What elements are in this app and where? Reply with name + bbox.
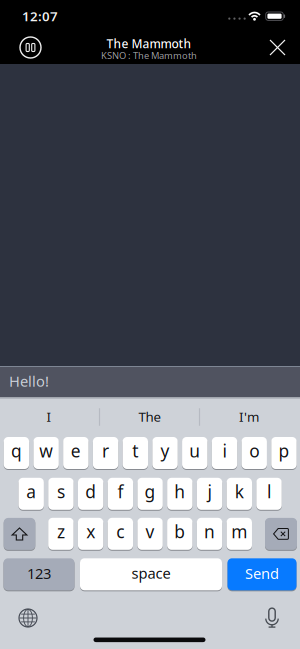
button[interactable]: y xyxy=(152,436,178,469)
button[interactable]: r xyxy=(93,436,118,469)
staticText: l xyxy=(267,480,271,503)
staticText: u xyxy=(189,439,200,462)
staticText: v xyxy=(146,520,155,543)
button[interactable]: m xyxy=(227,517,252,550)
staticText: b xyxy=(174,520,185,543)
staticText: t xyxy=(132,439,138,462)
staticText: k xyxy=(235,480,244,503)
staticText: I xyxy=(46,408,51,425)
staticText: q xyxy=(11,439,22,462)
staticText: h xyxy=(174,480,185,503)
staticText: w xyxy=(39,439,53,462)
button[interactable]: l xyxy=(256,477,282,510)
staticText: p xyxy=(278,439,289,462)
button[interactable] xyxy=(257,603,287,633)
button[interactable] xyxy=(13,603,43,633)
button[interactable]: I xyxy=(1,402,97,430)
staticText: I'm xyxy=(239,408,259,425)
staticText: f xyxy=(117,480,123,503)
staticText: The xyxy=(138,408,161,425)
button[interactable]: d xyxy=(78,477,103,510)
staticText: o xyxy=(249,439,259,462)
staticText: n xyxy=(204,520,215,543)
staticText: e xyxy=(71,439,81,462)
staticText: m xyxy=(231,520,247,543)
button[interactable]: i xyxy=(212,436,237,469)
button[interactable] xyxy=(265,517,297,550)
button[interactable]: w xyxy=(33,436,59,469)
button[interactable]: t xyxy=(123,436,148,469)
staticText: Send xyxy=(245,564,279,583)
staticText: a xyxy=(26,480,36,503)
button[interactable]: g xyxy=(137,477,163,510)
button[interactable]: p xyxy=(271,436,297,469)
staticText: Hello! xyxy=(9,371,49,391)
button[interactable]: h xyxy=(167,477,193,510)
button[interactable]: v xyxy=(137,517,163,550)
button[interactable]: j xyxy=(197,477,222,510)
button[interactable] xyxy=(263,33,291,61)
staticText: d xyxy=(85,480,96,503)
staticText: g xyxy=(145,480,156,503)
button[interactable]: o xyxy=(241,436,267,469)
button[interactable]: Send xyxy=(227,558,296,591)
staticText: c xyxy=(116,520,124,543)
staticText: KSNO : The Mammoth xyxy=(101,49,197,62)
button[interactable]: The xyxy=(102,402,198,430)
button[interactable]: Hello! xyxy=(0,367,300,397)
button[interactable]: c xyxy=(108,517,133,550)
button[interactable]: n xyxy=(197,517,222,550)
staticText: i xyxy=(222,439,226,462)
button[interactable]: 123 xyxy=(3,558,74,591)
button[interactable]: f xyxy=(108,477,133,510)
button[interactable]: I'm xyxy=(201,402,297,430)
staticText: 12:07 xyxy=(22,7,58,25)
button[interactable]: k xyxy=(227,477,252,510)
button[interactable]: space xyxy=(80,558,222,591)
button[interactable]: e xyxy=(63,436,89,469)
staticText: x xyxy=(86,520,95,543)
staticText: The Mammoth xyxy=(106,35,191,51)
button[interactable]: q xyxy=(4,436,29,469)
button[interactable] xyxy=(4,517,35,550)
staticText: space xyxy=(131,563,170,583)
button[interactable]: u xyxy=(182,436,207,469)
button[interactable]: s xyxy=(48,477,74,510)
staticText: j xyxy=(208,480,212,503)
button[interactable] xyxy=(13,30,47,64)
staticText: r xyxy=(102,439,109,462)
staticText: z xyxy=(57,520,65,543)
staticText: y xyxy=(160,439,169,462)
staticText: 123 xyxy=(27,564,51,583)
staticText: s xyxy=(57,480,65,503)
button[interactable]: b xyxy=(167,517,192,550)
button[interactable]: z xyxy=(48,517,74,550)
button[interactable]: a xyxy=(18,477,44,510)
button[interactable]: x xyxy=(78,517,103,550)
